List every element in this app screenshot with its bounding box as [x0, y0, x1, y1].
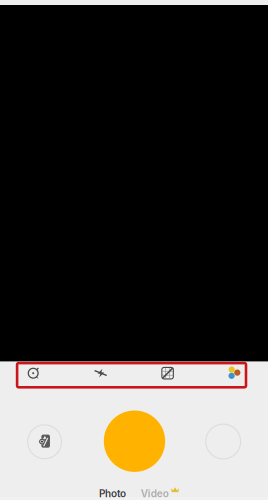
- button[interactable]: Take photo: [104, 410, 165, 472]
- button[interactable]: Timer: [4, 361, 62, 385]
- button[interactable]: Video: [141, 485, 179, 500]
- button[interactable]: Photo: [91, 485, 133, 500]
- button[interactable]: Switch camera: [203, 421, 243, 461]
- button[interactable]: Flash off: [72, 361, 130, 385]
- button[interactable]: Grid: [139, 361, 197, 385]
- staticText: Video: [141, 488, 169, 500]
- staticText: Photo: [99, 488, 126, 500]
- button[interactable]: Photo library: [25, 422, 65, 462]
- button[interactable]: Filters: [205, 361, 263, 385]
